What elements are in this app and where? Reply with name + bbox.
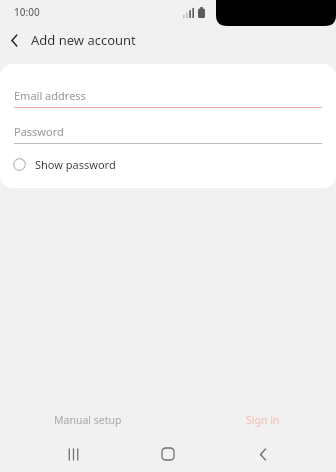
- staticText: Password: [14, 124, 64, 139]
- staticText: 10:00: [14, 5, 40, 19]
- button[interactable]: Recent apps: [51, 436, 95, 472]
- button[interactable]: Back: [241, 436, 285, 472]
- button[interactable]: Sign in: [238, 408, 288, 432]
- staticText: Add new account: [31, 31, 136, 49]
- staticText: Sign in: [246, 413, 280, 427]
- staticText: Show password: [35, 157, 116, 172]
- button[interactable]: Back: [0, 25, 30, 55]
- staticText: Manual setup: [54, 413, 122, 427]
- staticText: Email address: [14, 88, 86, 103]
- button[interactable]: Manual setup: [46, 408, 130, 432]
- button[interactable]: Password: [0, 120, 336, 143]
- button[interactable]: Home: [146, 436, 190, 472]
- button[interactable]: Show password: [0, 150, 336, 178]
- button[interactable]: Email address: [0, 84, 336, 107]
